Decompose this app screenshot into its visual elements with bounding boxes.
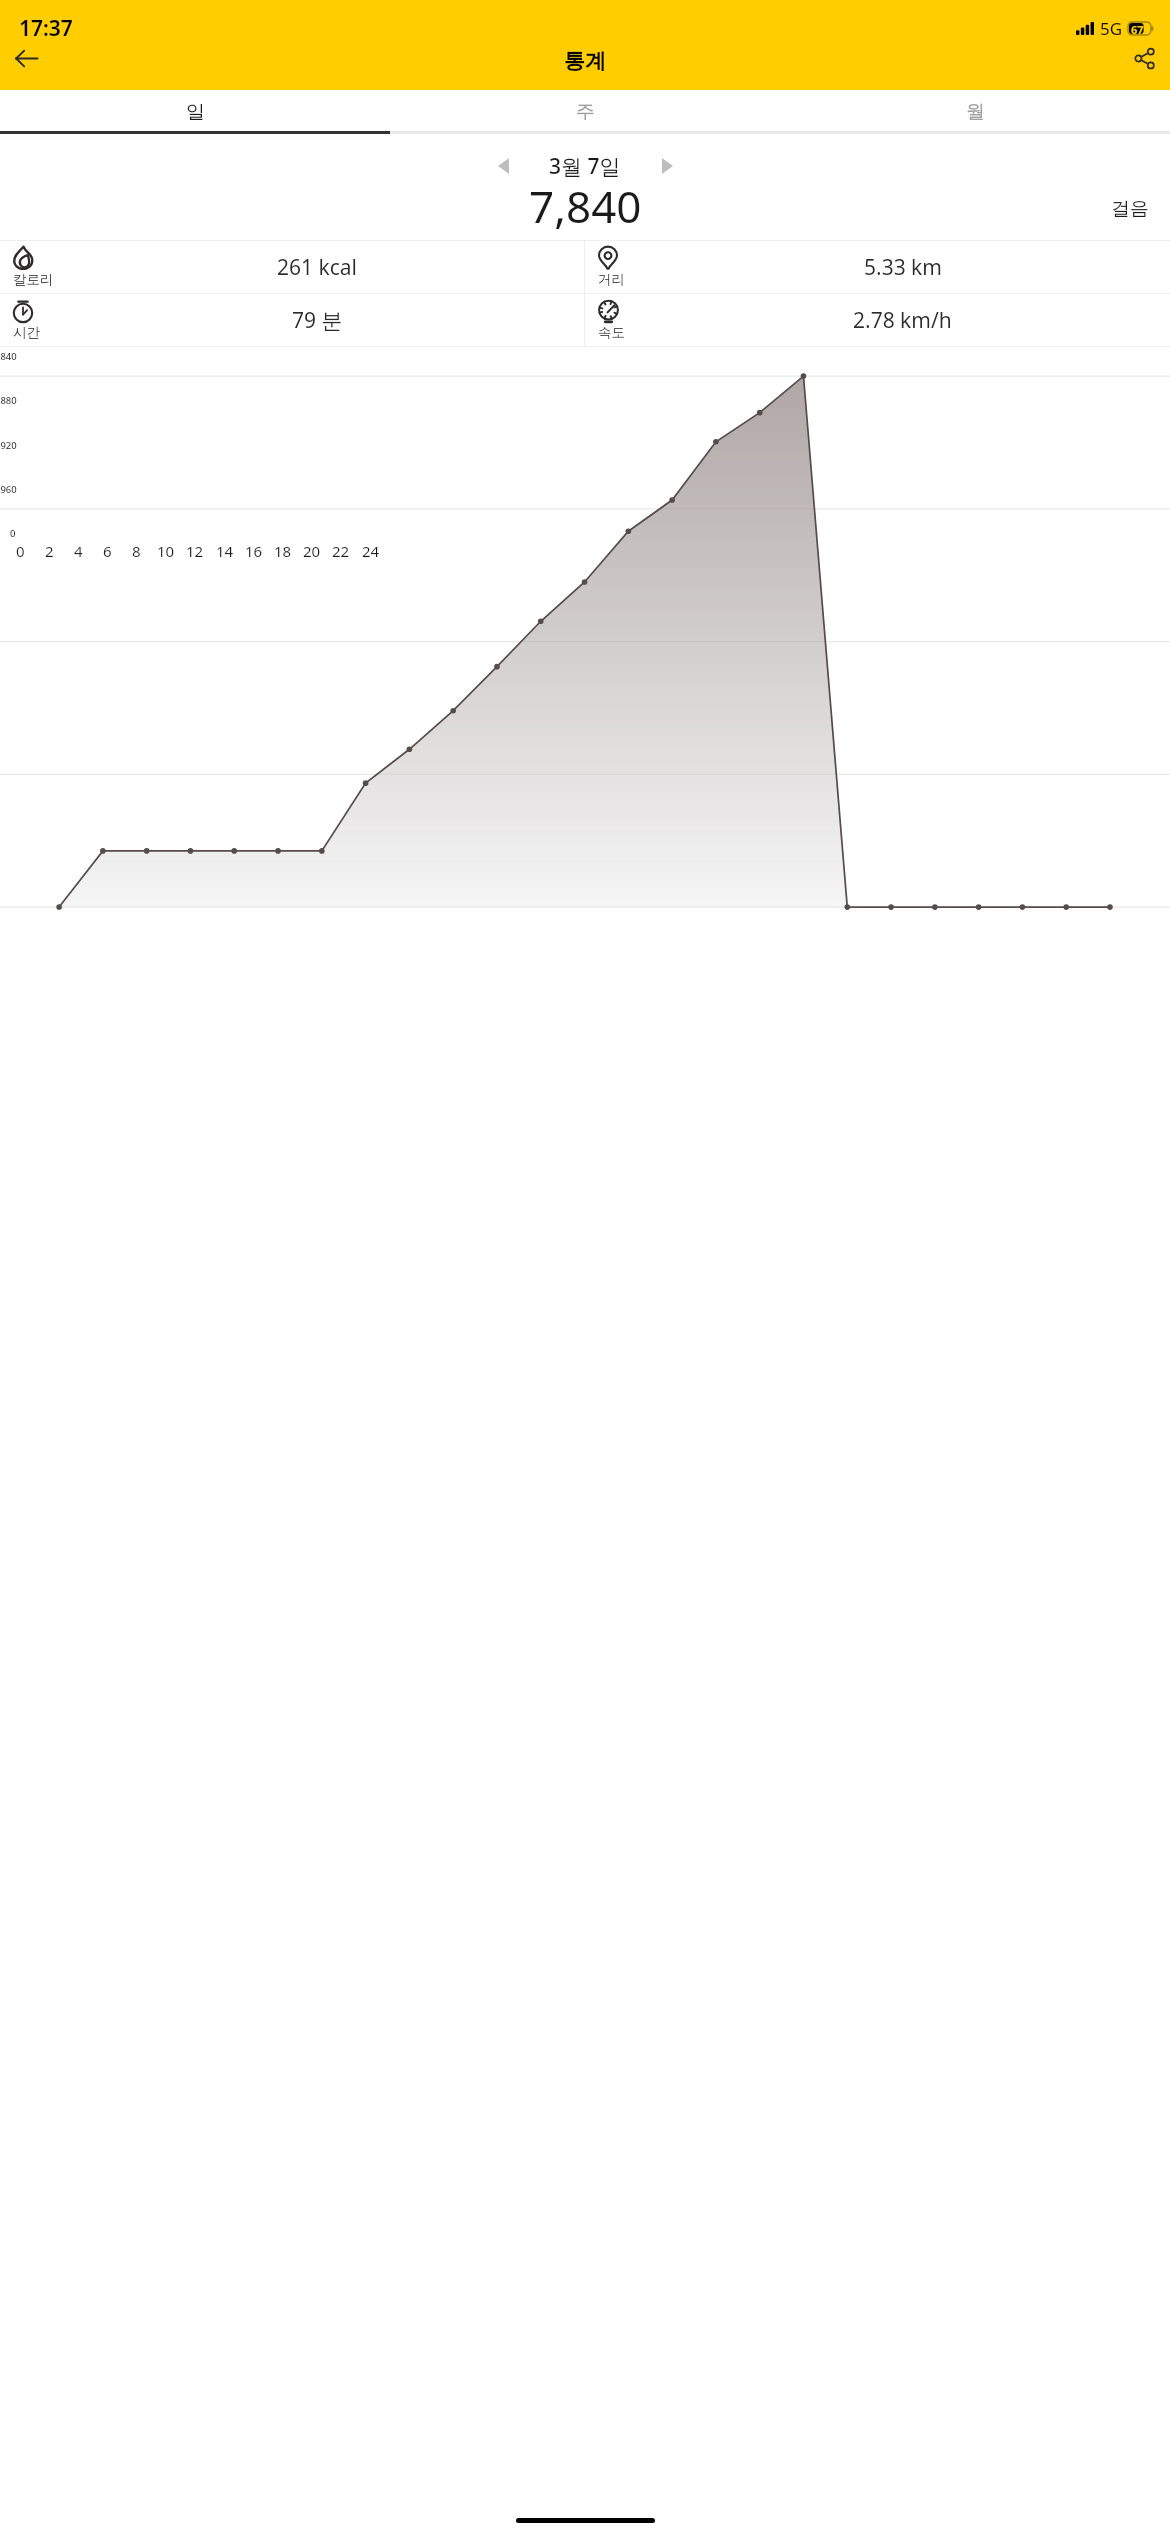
staticText: 월 bbox=[966, 100, 985, 124]
staticText: 20 bbox=[303, 541, 321, 561]
button[interactable]: 일 bbox=[0, 90, 390, 134]
button[interactable]: 칼로리 bbox=[0, 241, 584, 293]
staticText: 5880 bbox=[0, 394, 17, 407]
button[interactable]: Next day bbox=[645, 146, 689, 186]
staticText: 5G bbox=[1100, 17, 1123, 40]
staticText: 칼로리 bbox=[13, 271, 54, 288]
staticText: 2.78 km/h bbox=[853, 306, 952, 335]
button[interactable]: 월 bbox=[780, 90, 1170, 134]
staticText: 일 bbox=[186, 100, 205, 124]
staticText: 3920 bbox=[0, 439, 17, 452]
staticText: 24 bbox=[362, 541, 380, 561]
button[interactable]: 거리 bbox=[585, 241, 1170, 293]
staticText: 16 bbox=[245, 541, 263, 561]
staticText: 3월 7일 bbox=[549, 152, 621, 181]
staticText: 시간 bbox=[13, 324, 40, 341]
staticText: 0 bbox=[16, 541, 25, 561]
button[interactable]: Share bbox=[1118, 32, 1170, 84]
staticText: 걸음 bbox=[1111, 197, 1149, 221]
button[interactable]: 속도 bbox=[585, 294, 1170, 346]
staticText: 0 bbox=[10, 527, 16, 540]
staticText: 속도 bbox=[598, 324, 625, 341]
staticText: 14 bbox=[216, 541, 234, 561]
staticText: 18 bbox=[274, 541, 292, 561]
staticText: 주 bbox=[576, 100, 595, 124]
staticText: 4 bbox=[74, 541, 83, 561]
staticText: 22 bbox=[332, 541, 350, 561]
button[interactable]: Back bbox=[0, 32, 52, 84]
staticText: 거리 bbox=[598, 271, 625, 288]
staticText: 10 bbox=[157, 541, 175, 561]
staticText: 8 bbox=[132, 541, 141, 561]
button[interactable]: 주 bbox=[390, 90, 780, 134]
staticText: 261 kcal bbox=[277, 253, 357, 282]
staticText: 6 bbox=[103, 541, 112, 561]
button[interactable]: 시간 bbox=[0, 294, 584, 346]
staticText: 67 bbox=[1131, 22, 1144, 35]
staticText: 통계 bbox=[564, 48, 606, 74]
staticText: 7,840 bbox=[529, 176, 642, 236]
button[interactable]: Previous day bbox=[481, 146, 525, 186]
staticText: 79 분 bbox=[292, 306, 343, 335]
staticText: 7840 bbox=[0, 350, 17, 363]
staticText: 1960 bbox=[0, 483, 17, 496]
staticText: 17:37 bbox=[19, 14, 73, 43]
staticText: 2 bbox=[45, 541, 54, 561]
staticText: 12 bbox=[186, 541, 204, 561]
staticText: 5.33 km bbox=[864, 253, 942, 282]
